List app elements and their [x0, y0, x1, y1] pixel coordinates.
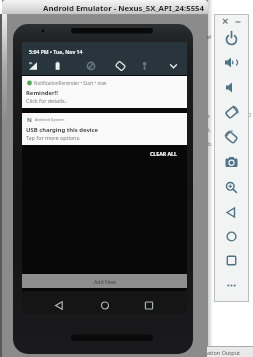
button[interactable]: [223, 204, 240, 221]
button[interactable]: [220, 17, 230, 25]
button[interactable]: N: [22, 113, 187, 145]
button[interactable]: Add New: [22, 274, 187, 288]
staticText: Add New: [94, 278, 116, 285]
staticText: t,: [208, 127, 212, 134]
button[interactable]: [233, 17, 243, 25]
button[interactable]: NotificationReminder • Start • now: [22, 76, 187, 108]
staticText: Reminder!!: [26, 89, 58, 97]
staticText: CLEAR ALL: [150, 150, 177, 157]
button[interactable]: [223, 179, 240, 196]
staticText: r.: [208, 113, 211, 120]
button[interactable]: [223, 277, 240, 294]
button[interactable]: [223, 79, 240, 96]
staticText: Click for details..: [26, 97, 68, 104]
button[interactable]: [223, 129, 240, 146]
staticText: 5:04 PM • Tue, Nov 14: [29, 48, 83, 55]
button[interactable]: [98, 299, 112, 312]
button[interactable]: [52, 299, 66, 312]
staticText: USB charging this device: [26, 126, 99, 134]
button[interactable]: [142, 299, 156, 312]
staticText: e!: [207, 33, 212, 40]
button[interactable]: CLEAR ALL: [137, 148, 177, 158]
button[interactable]: [223, 252, 240, 269]
staticText: Tap for more options.: [26, 134, 81, 141]
button[interactable]: [223, 228, 240, 245]
staticText: Android System: [35, 117, 65, 122]
staticText: Android Emulator - Nexus_5X_API_24:5554: [43, 3, 205, 14]
button[interactable]: [223, 54, 240, 71]
staticText: ,0: [247, 112, 252, 119]
button[interactable]: [223, 104, 240, 121]
staticText: N: [27, 116, 32, 124]
staticText: b.: [208, 141, 213, 148]
staticText: NotificationReminder • Start • now: [34, 80, 107, 86]
button[interactable]: [22, 42, 187, 75]
staticText: ation Output: [207, 349, 241, 356]
button[interactable]: [223, 154, 240, 171]
button[interactable]: [223, 30, 240, 47]
